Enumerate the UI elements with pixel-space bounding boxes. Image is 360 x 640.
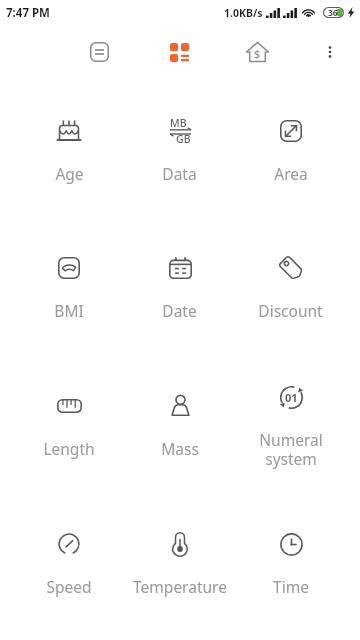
- button[interactable]: MB: [124, 95, 235, 207]
- staticText: Date: [162, 300, 197, 321]
- staticText: Data: [162, 163, 197, 184]
- staticText: Area: [274, 163, 308, 184]
- staticText: GB: [176, 132, 191, 146]
- button[interactable]: Mass: [124, 370, 235, 482]
- staticText: Temperature: [133, 576, 227, 597]
- button[interactable]: Temperature: [124, 508, 235, 620]
- staticText: 01: [285, 390, 298, 405]
- staticText: Mass: [161, 438, 199, 459]
- button[interactable]: 01: [235, 370, 346, 482]
- staticText: 1.0KB/s: [224, 6, 263, 20]
- staticText: Age: [55, 163, 84, 184]
- button[interactable]: Length: [13, 370, 124, 482]
- staticText: BMI: [54, 300, 84, 321]
- staticText: Length: [43, 438, 95, 459]
- staticText: Discount: [258, 300, 323, 321]
- button[interactable]: Speed: [13, 508, 124, 620]
- staticText: MB: [170, 116, 187, 130]
- button[interactable]: Calculator: [77, 30, 121, 74]
- staticText: 36: [328, 7, 338, 18]
- staticText: Time: [273, 576, 309, 597]
- button[interactable]: Date: [124, 232, 235, 344]
- button[interactable]: BMI: [13, 232, 124, 344]
- staticText: 7:47 PM: [6, 5, 50, 21]
- button[interactable]: Converter: [157, 30, 201, 74]
- staticText: Speed: [46, 576, 92, 597]
- button[interactable]: Area: [235, 95, 346, 207]
- staticText: Numeral system: [259, 429, 323, 469]
- staticText: $: [254, 46, 261, 61]
- button[interactable]: Age: [13, 95, 124, 207]
- button[interactable]: Discount: [235, 232, 346, 344]
- button[interactable]: Time: [235, 508, 346, 620]
- button[interactable]: Finance: [235, 30, 279, 74]
- button[interactable]: More options: [308, 30, 352, 74]
